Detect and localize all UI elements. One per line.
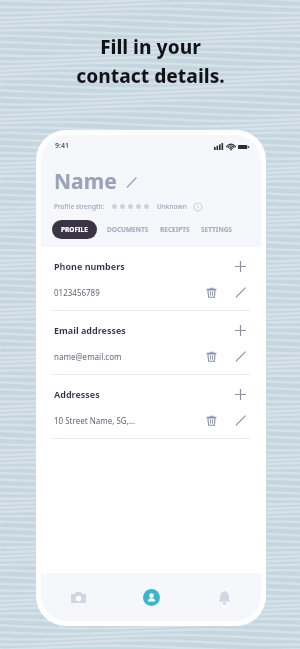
staticText: name@email.com xyxy=(54,351,203,362)
staticText: 9:41 xyxy=(55,141,69,151)
staticText: Email addresses xyxy=(54,324,232,336)
staticText: PROFILE xyxy=(61,225,88,234)
button[interactable]: PROFILE xyxy=(52,220,97,239)
button[interactable]: Add Addresses xyxy=(232,386,248,402)
button[interactable]: RECEIPTS xyxy=(157,220,193,239)
button[interactable]: Delete xyxy=(203,348,219,364)
button[interactable]: Profile xyxy=(115,573,188,621)
staticText: 10 Street Name, SG,… xyxy=(54,415,203,426)
button[interactable]: SETTINGS xyxy=(198,220,235,239)
button[interactable]: Edit xyxy=(232,284,248,300)
button[interactable]: DOCUMENTS xyxy=(104,220,152,239)
button[interactable]: Camera xyxy=(41,573,115,621)
button[interactable]: Info xyxy=(193,202,202,211)
staticText: SETTINGS xyxy=(201,225,232,234)
button[interactable]: name@email.com xyxy=(41,348,261,364)
staticText: 0123456789 xyxy=(54,287,203,298)
staticText: Profile strength: xyxy=(54,202,105,211)
staticText: Unknown xyxy=(157,202,187,211)
staticText: RECEIPTS xyxy=(160,225,190,234)
staticText: contact details. xyxy=(76,63,225,89)
button[interactable]: Notifications xyxy=(188,573,261,621)
button[interactable]: Delete xyxy=(203,412,219,428)
button[interactable]: Edit name xyxy=(124,175,138,189)
button[interactable]: 0123456789 xyxy=(41,284,261,300)
staticText: DOCUMENTS xyxy=(107,225,149,234)
button[interactable]: 10 Street Name, SG,… xyxy=(41,412,261,428)
staticText: Phone numbers xyxy=(54,260,232,272)
button[interactable]: Edit xyxy=(232,348,248,364)
staticText: Addresses xyxy=(54,388,232,400)
staticText: Name xyxy=(54,167,117,196)
staticText: Fill in your xyxy=(100,34,201,60)
button[interactable]: Delete xyxy=(203,284,219,300)
button[interactable]: Add Email addresses xyxy=(232,322,248,338)
button[interactable]: Edit xyxy=(232,412,248,428)
button[interactable]: Add Phone numbers xyxy=(232,258,248,274)
